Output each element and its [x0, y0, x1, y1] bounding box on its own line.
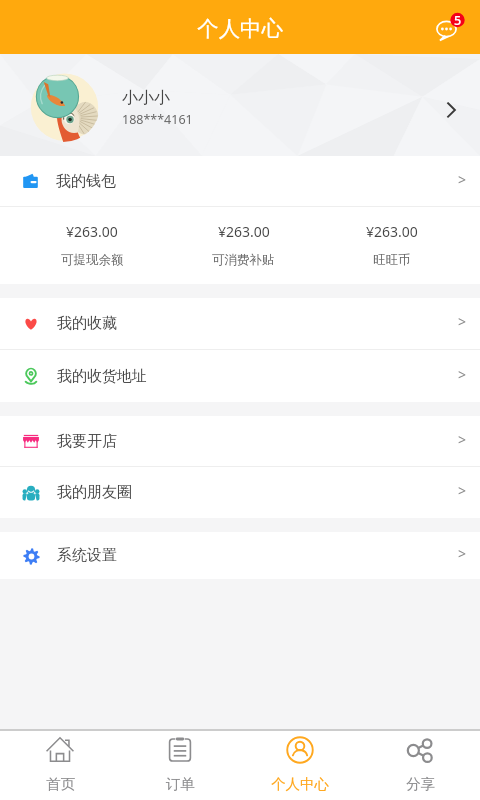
button[interactable]: 我的收藏	[0, 298, 480, 349]
staticText: 我的钱包	[56, 172, 116, 191]
button[interactable]: ¥263.00	[0, 207, 184, 284]
staticText: 旺旺币	[373, 252, 411, 268]
staticText: 个人中心	[197, 15, 283, 42]
staticText: >	[458, 312, 467, 331]
button[interactable]: 我的朋友圈	[0, 467, 480, 518]
staticText: >	[458, 481, 467, 500]
button[interactable]: 个人中心	[240, 731, 360, 800]
staticText: 首页	[46, 775, 75, 793]
staticText: >	[458, 170, 467, 189]
button[interactable]: ¥263.00	[184, 207, 303, 284]
button[interactable]: 订单	[120, 731, 240, 800]
button[interactable]: 系统设置	[0, 532, 480, 579]
staticText: 可消费补贴	[212, 252, 275, 268]
staticText: 小小小	[122, 88, 170, 108]
button[interactable]: 我要开店	[0, 416, 480, 466]
staticText: ¥263.00	[366, 222, 418, 241]
staticText: ¥263.00	[66, 222, 118, 241]
button[interactable]: 首页	[0, 731, 120, 800]
staticText: 系统设置	[57, 546, 117, 565]
staticText: ¥263.00	[218, 222, 270, 241]
button[interactable]: Messages	[424, 3, 472, 51]
button[interactable]: 小小小	[0, 54, 480, 156]
staticText: >	[458, 365, 467, 384]
button[interactable]: 我的收货地址	[0, 350, 480, 402]
button[interactable]: 我的钱包	[0, 156, 480, 206]
button[interactable]: ¥263.00	[303, 207, 480, 284]
staticText: 5	[454, 12, 462, 29]
staticText: 我的收藏	[57, 314, 117, 333]
staticText: 个人中心	[271, 775, 329, 793]
button[interactable]: 分享	[360, 731, 480, 800]
staticText: 我的朋友圈	[57, 483, 132, 502]
staticText: >	[458, 544, 467, 563]
staticText: >	[458, 430, 467, 449]
staticText: 订单	[166, 775, 195, 793]
staticText: 188***4161	[122, 111, 193, 128]
staticText: 我要开店	[57, 432, 117, 451]
staticText: 我的收货地址	[57, 367, 147, 386]
staticText: 分享	[406, 775, 435, 793]
staticText: 可提现余额	[61, 252, 124, 268]
